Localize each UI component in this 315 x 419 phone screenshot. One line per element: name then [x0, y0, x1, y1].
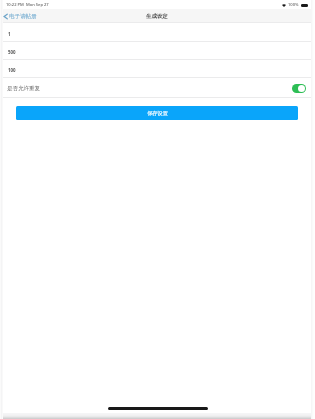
button[interactable]: 电子请帖册 [0, 13, 40, 20]
staticText: 1 [8, 31, 11, 37]
staticText: 10:22 PM Mon Sep 27 [6, 2, 49, 8]
button[interactable]: 保存设置 [16, 106, 298, 120]
button[interactable]: 1 [0, 24, 315, 42]
staticText: 电子请帖册 [9, 13, 37, 20]
staticText: 100% [288, 2, 299, 8]
button[interactable]: Toggle allow duplicates [292, 84, 306, 93]
staticText: 100 [8, 67, 16, 73]
button[interactable]: 是否允许重复 [0, 78, 315, 98]
staticText: 生成设定 [146, 13, 168, 20]
button[interactable]: 100 [0, 60, 315, 78]
button[interactable]: 500 [0, 42, 315, 60]
staticText: 是否允许重复 [7, 85, 40, 92]
staticText: 500 [8, 49, 16, 55]
staticText: 保存设置 [147, 110, 168, 117]
